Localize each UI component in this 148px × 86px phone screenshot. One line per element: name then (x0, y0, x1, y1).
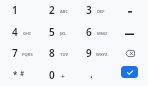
button[interactable]: 0 plus (37, 65, 74, 86)
staticText: TUV (60, 52, 69, 57)
button[interactable]: Confirm (121, 66, 138, 78)
staticText: . (90, 67, 93, 81)
staticText: 2 (49, 3, 55, 17)
staticText: JKL (60, 31, 67, 36)
button[interactable]: 7 PQRS (0, 43, 37, 65)
button[interactable]: 2 ABC (37, 0, 74, 22)
staticText: 1 (12, 3, 18, 17)
button[interactable]: Backspace (111, 43, 148, 65)
staticText: DEF (97, 9, 105, 14)
button[interactable]: 4 GHI (0, 22, 37, 44)
button[interactable]: 9 WXYZ (74, 43, 111, 65)
button[interactable]: 6 MNO (74, 22, 111, 44)
button[interactable]: Dash (111, 0, 148, 22)
staticText: 9 (86, 46, 92, 60)
staticText: 6 (86, 25, 92, 39)
staticText: MNO (97, 31, 108, 36)
staticText: 4 (12, 25, 18, 39)
button[interactable]: 1 (0, 0, 37, 22)
button[interactable]: Underscore (111, 22, 148, 44)
staticText: 0 (49, 68, 55, 82)
staticText: 8 (49, 46, 55, 60)
staticText: 5 (49, 25, 55, 39)
staticText: 7 (12, 46, 18, 60)
staticText: 3 (86, 3, 92, 17)
staticText: # (20, 69, 25, 78)
staticText: * (13, 69, 18, 80)
button[interactable]: 5 JKL (37, 22, 74, 44)
button[interactable]: period (74, 65, 111, 86)
staticText: ABC (60, 9, 69, 14)
staticText: WXYZ (96, 52, 108, 57)
staticText: PQRS (22, 52, 33, 57)
button[interactable]: 3 DEF (74, 0, 111, 22)
button[interactable]: 8 TUV (37, 43, 74, 65)
staticText: + (61, 72, 65, 81)
staticText: GHI (23, 31, 31, 36)
button[interactable]: star, hash (0, 65, 37, 86)
